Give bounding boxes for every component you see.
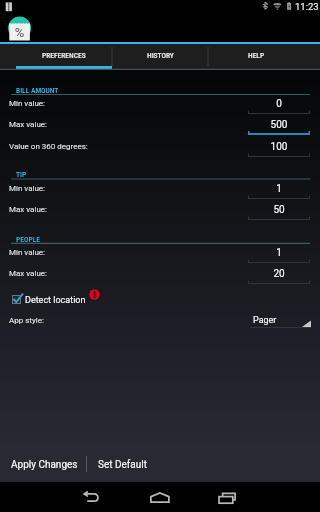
- button[interactable]: Max value:: [0, 200, 320, 221]
- staticText: HELP: [248, 51, 265, 60]
- staticText: 500: [248, 119, 310, 131]
- button[interactable]: Home: [140, 482, 180, 512]
- staticText: %: [9, 25, 30, 40]
- staticText: 1: [248, 247, 310, 259]
- button[interactable]: Min value:: [0, 94, 320, 115]
- staticText: App style:: [9, 316, 44, 325]
- staticText: Min value:: [9, 184, 46, 193]
- staticText: PEOPLE: [16, 235, 40, 244]
- button[interactable]: Apply Changes: [6, 452, 83, 478]
- staticText: 0: [248, 98, 310, 110]
- staticText: Pager: [253, 315, 277, 326]
- button[interactable]: Max value:: [0, 115, 320, 136]
- button[interactable]: Max value:: [0, 264, 320, 285]
- staticText: 50: [248, 204, 310, 216]
- staticText: Min value:: [9, 99, 46, 108]
- staticText: 11:23: [295, 1, 319, 12]
- staticText: 100: [248, 141, 310, 153]
- staticText: Apply Changes: [11, 459, 78, 471]
- staticText: Set Default: [98, 459, 147, 471]
- button[interactable]: PREFERENCES: [16, 44, 112, 70]
- staticText: Max value:: [9, 269, 47, 278]
- button[interactable]: Back: [72, 482, 112, 512]
- button[interactable]: Recent apps: [208, 482, 248, 512]
- button[interactable]: Value on 360 degrees:: [0, 137, 320, 158]
- staticText: Max value:: [9, 205, 47, 214]
- button[interactable]: HISTORY: [112, 44, 208, 70]
- staticText: 20: [248, 268, 310, 280]
- staticText: 1: [248, 183, 310, 195]
- button[interactable]: Detect location: [0, 291, 320, 309]
- button[interactable]: Min value:: [0, 179, 320, 200]
- staticText: TIP: [16, 170, 27, 179]
- staticText: Value on 360 degrees:: [9, 142, 88, 151]
- staticText: Min value:: [9, 248, 46, 257]
- button[interactable]: HELP: [208, 44, 304, 70]
- staticText: HISTORY: [147, 51, 174, 60]
- staticText: Detect location: [25, 295, 86, 306]
- button[interactable]: Set Default: [93, 452, 152, 478]
- staticText: BILL AMOUNT: [16, 86, 59, 95]
- button[interactable]: Min value:: [0, 243, 320, 264]
- staticText: Max value:: [9, 120, 47, 129]
- staticText: PREFERENCES: [42, 51, 86, 60]
- button[interactable]: App style:: [0, 311, 320, 332]
